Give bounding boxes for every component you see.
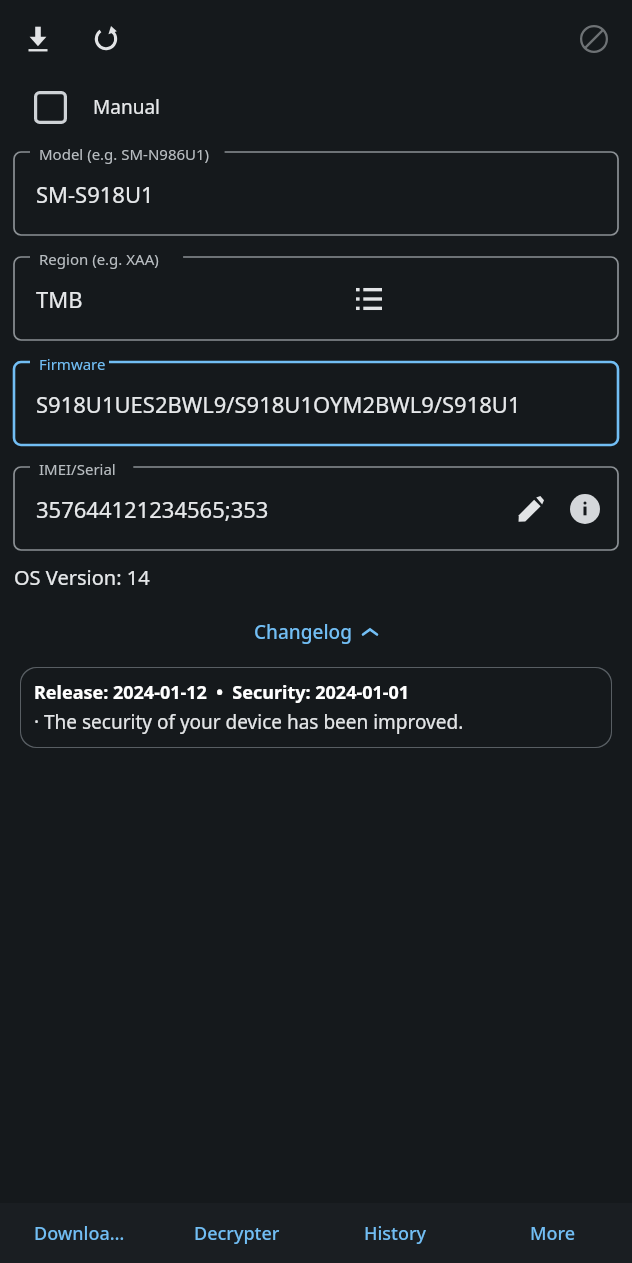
button[interactable]: Refresh xyxy=(82,15,130,63)
staticText: Region (e.g. XAA) xyxy=(39,249,159,269)
staticText: More xyxy=(530,1221,576,1246)
staticText: 357644121234565;35313860123456 xyxy=(36,494,272,524)
button[interactable]: History xyxy=(316,1203,474,1263)
button[interactable]: Release: 2024-01-12 • Security: 2024-01-… xyxy=(20,667,612,748)
button[interactable]: More xyxy=(474,1203,632,1263)
staticText: Downloa… xyxy=(34,1221,125,1246)
staticText: Changelog xyxy=(254,619,352,645)
button[interactable]: Region list xyxy=(346,276,392,322)
button[interactable]: Manual xyxy=(22,78,172,136)
staticText: Release: 2024-01-12 • Security: 2024-01-… xyxy=(34,680,410,705)
staticText: Firmware xyxy=(39,354,106,374)
button[interactable]: Decrypter xyxy=(158,1203,316,1263)
staticText: History xyxy=(364,1221,427,1246)
staticText: TMB xyxy=(36,284,83,314)
button[interactable]: SM-S918U1 xyxy=(14,152,618,235)
staticText: Decrypter xyxy=(194,1221,280,1246)
button[interactable]: TMB xyxy=(14,257,618,340)
button[interactable]: S918U1UES2BWL9/S918U1OYM2BWL9/S918U1 xyxy=(14,362,618,445)
staticText: · The security of your device has been i… xyxy=(34,709,464,735)
button[interactable]: Changelog xyxy=(240,611,392,653)
staticText: SM-S918U1 xyxy=(36,179,154,209)
staticText: Model (e.g. SM-N986U1) xyxy=(39,144,210,164)
staticText: OS Version: 14 xyxy=(14,564,150,591)
button[interactable]: IMEI info xyxy=(562,486,608,532)
button[interactable]: Edit IMEI xyxy=(508,486,554,532)
staticText: Manual xyxy=(93,94,160,120)
button[interactable]: 357644121234565;35313860123456 xyxy=(14,467,618,550)
staticText: IMEI/Serial xyxy=(39,459,116,479)
button[interactable]: Cancel xyxy=(570,15,618,63)
staticText: S918U1UES2BWL9/S918U1OYM2BWL9/S918U1 xyxy=(36,389,521,419)
button[interactable]: Downloa… xyxy=(0,1203,158,1263)
button[interactable]: Download xyxy=(14,15,62,63)
